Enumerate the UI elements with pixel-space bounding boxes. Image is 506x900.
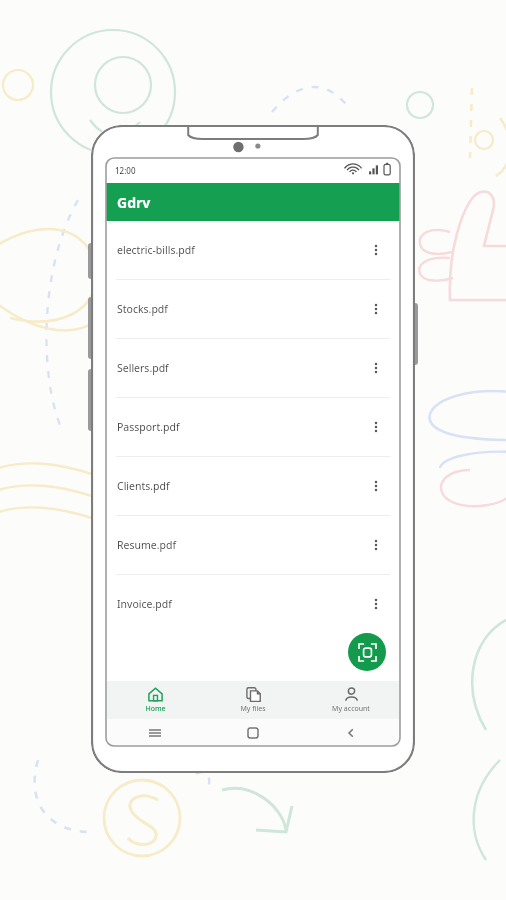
button[interactable]: Sellers.pdf	[106, 339, 400, 397]
staticText: electric-bills.pdf	[117, 243, 195, 257]
staticText: Invoice.pdf	[117, 597, 172, 611]
button[interactable]: More options for Clients.pdf	[363, 473, 389, 499]
button[interactable]: More options for Stocks.pdf	[363, 296, 389, 322]
staticText: Clients.pdf	[117, 479, 170, 493]
button[interactable]: More options for Passport.pdf	[363, 414, 389, 440]
button[interactable]: Recents	[106, 719, 204, 746]
button[interactable]: Invoice.pdf	[106, 575, 400, 633]
button[interactable]: More options for Resume.pdf	[363, 532, 389, 558]
button[interactable]: More options for Sellers.pdf	[363, 355, 389, 381]
staticText: Stocks.pdf	[117, 302, 168, 316]
button[interactable]: Resume.pdf	[106, 516, 400, 574]
staticText: My account	[332, 704, 370, 714]
button[interactable]: Passport.pdf	[106, 398, 400, 456]
button[interactable]: Stocks.pdf	[106, 280, 400, 338]
staticText: Resume.pdf	[117, 538, 177, 552]
button[interactable]: Home	[106, 681, 204, 719]
button[interactable]: My account	[302, 681, 400, 719]
button[interactable]: electric-bills.pdf	[106, 221, 400, 279]
staticText: Sellers.pdf	[117, 361, 169, 375]
button[interactable]: Scan document	[348, 633, 386, 671]
staticText: Gdrv	[117, 193, 151, 212]
button[interactable]: More options for electric-bills.pdf	[363, 237, 389, 263]
staticText: Home	[145, 704, 166, 714]
staticText: Passport.pdf	[117, 420, 180, 434]
staticText: 12:00	[115, 165, 136, 176]
button[interactable]: Back	[302, 719, 400, 746]
button[interactable]: Home	[204, 719, 302, 746]
staticText: My files	[240, 704, 266, 714]
button[interactable]: More options for Invoice.pdf	[363, 591, 389, 617]
button[interactable]: My files	[204, 681, 302, 719]
button[interactable]: Clients.pdf	[106, 457, 400, 515]
